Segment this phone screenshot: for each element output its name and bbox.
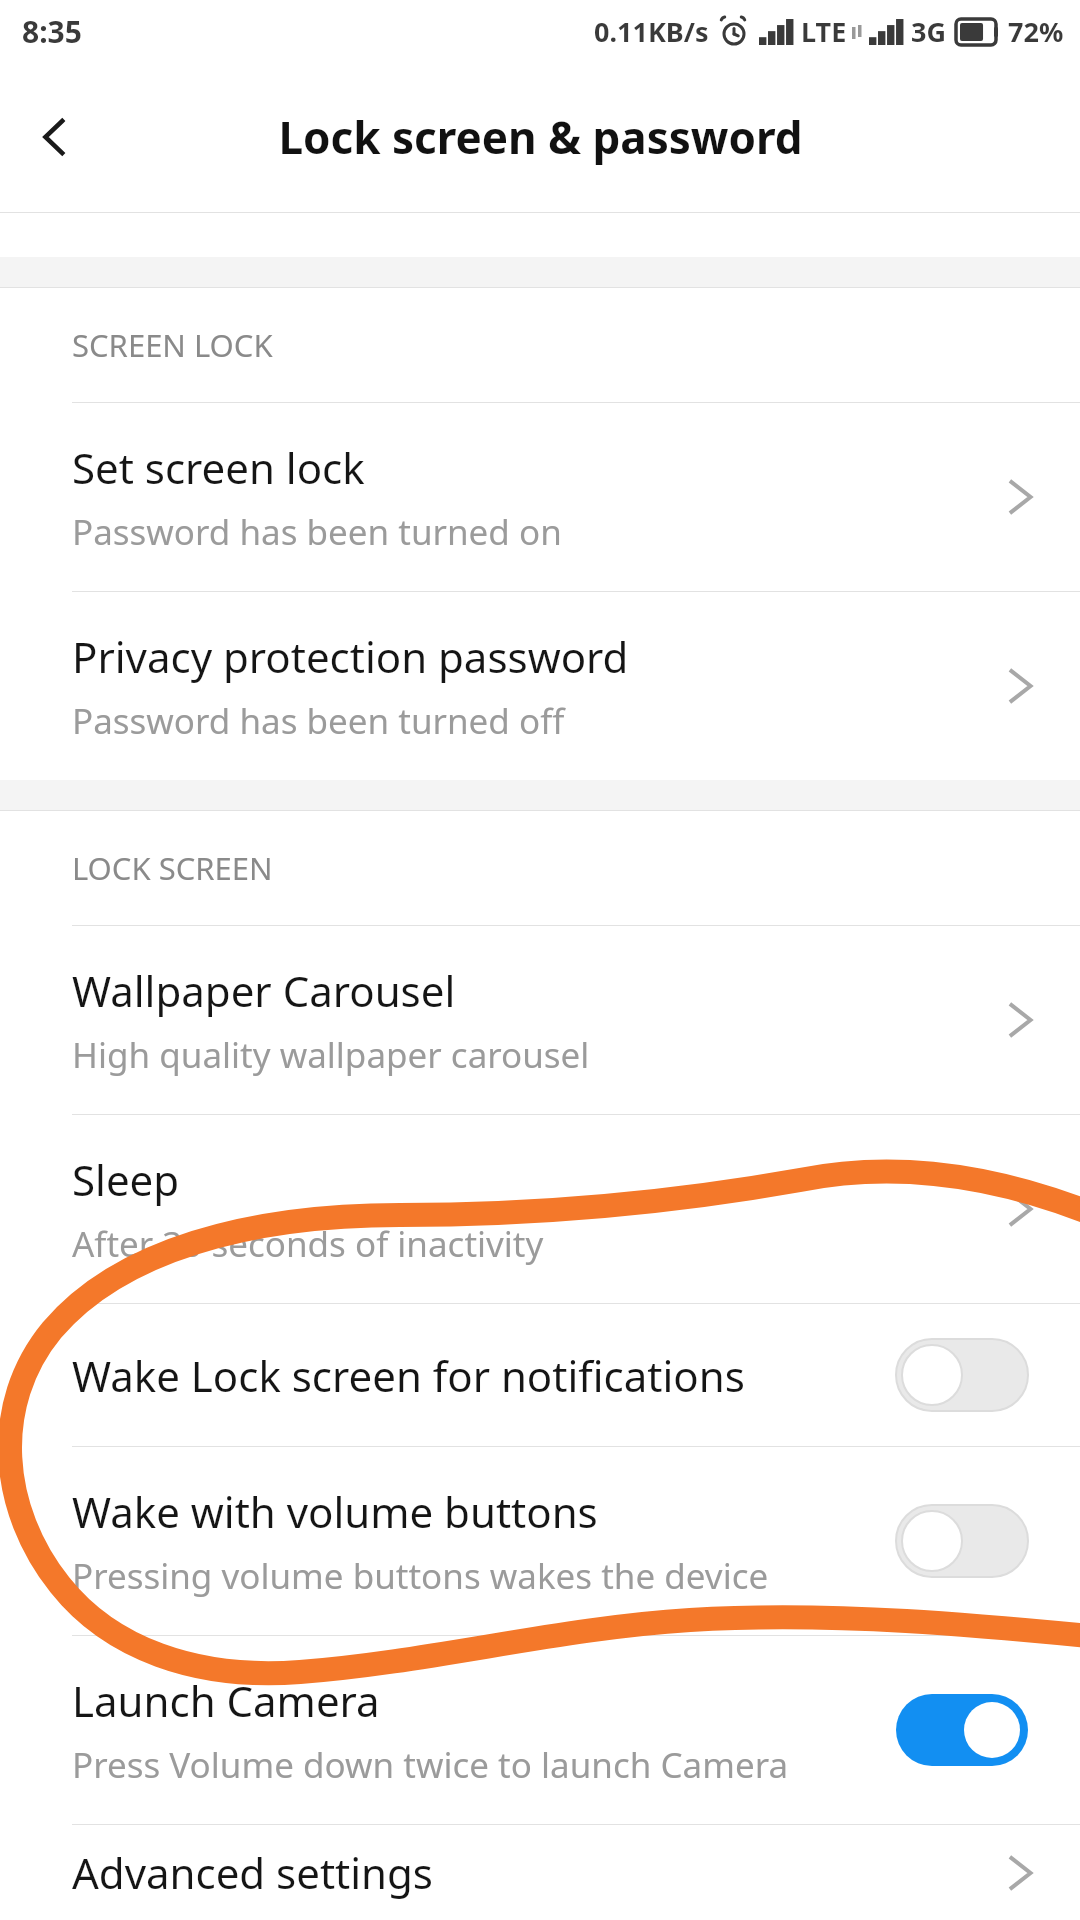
button[interactable]: Wake with volume buttons (0, 1447, 1080, 1635)
staticText: Wallpaper Carousel (72, 962, 456, 1019)
staticText: Launch Camera (72, 1672, 380, 1729)
staticText: Sleep (72, 1151, 180, 1208)
staticText: 8:35 (22, 11, 82, 52)
button[interactable]: Toggle off (896, 1505, 1028, 1577)
staticText: 3G (911, 13, 946, 50)
staticText: Privacy protection password (72, 628, 629, 685)
staticText: Lock screen & password (278, 107, 803, 167)
button[interactable]: Wallpaper Carousel (0, 926, 1080, 1114)
staticText: Wake Lock screen for notifications (72, 1347, 745, 1404)
button[interactable]: Advanced settings (0, 1825, 1080, 1920)
button[interactable]: Set screen lock (0, 403, 1080, 591)
staticText: 0.11KB/s (594, 13, 709, 50)
button[interactable]: Toggle off (896, 1339, 1028, 1411)
staticText: Set screen lock (72, 439, 365, 496)
staticText: Advanced settings (72, 1844, 1004, 1901)
button[interactable]: Wake Lock screen for notifications (0, 1304, 1080, 1446)
staticText: LOCK SCREEN (72, 847, 273, 889)
button[interactable]: Toggle on (896, 1694, 1028, 1766)
staticText: 72% (1008, 13, 1064, 50)
button[interactable]: Back (0, 82, 110, 192)
staticText: Pressing volume buttons wakes the device (72, 1552, 769, 1600)
staticText: SCREEN LOCK (72, 324, 273, 366)
staticText: Wake with volume buttons (72, 1483, 598, 1540)
staticText: Password has been turned on (72, 508, 562, 556)
staticText: High quality wallpaper carousel (72, 1031, 590, 1079)
button[interactable]: Launch Camera (0, 1636, 1080, 1824)
button[interactable]: Sleep (0, 1115, 1080, 1303)
staticText: LTE (801, 13, 847, 50)
staticText: Password has been turned off (72, 697, 565, 745)
button[interactable]: Privacy protection password (0, 592, 1080, 780)
staticText: Press Volume down twice to launch Camera (72, 1741, 789, 1789)
staticText: After 30 seconds of inactivity (72, 1220, 544, 1268)
